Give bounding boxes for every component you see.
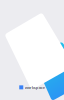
staticText: workspace	[25, 85, 45, 90]
